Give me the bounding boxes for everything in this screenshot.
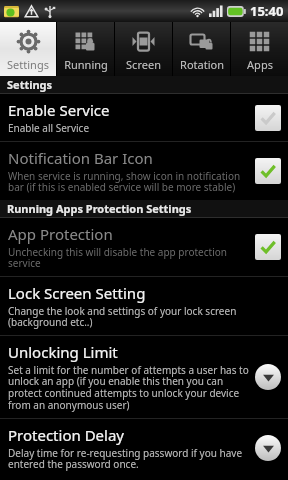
button[interactable]: Rotation (173, 22, 230, 76)
button[interactable]: Unlocking Limit (0, 336, 288, 418)
staticText: Settings (7, 77, 53, 92)
button[interactable]: Notification Bar Icon (0, 142, 288, 200)
staticText: Running Apps Protection Settings (7, 201, 192, 216)
staticText: Enable Service (8, 100, 110, 120)
button[interactable]: Apps (231, 22, 288, 76)
button[interactable]: Running (57, 22, 114, 76)
staticText: 15:40 (250, 2, 284, 20)
staticText: When service is running, show icon in no… (8, 169, 249, 194)
button[interactable]: Settings (0, 22, 56, 76)
button[interactable]: Enable Service (255, 105, 281, 131)
staticText: Set a limit for the number of attempts a… (8, 363, 249, 412)
button[interactable]: Expand Unlocking Limit (255, 364, 281, 390)
button[interactable]: Lock Screen Setting (0, 277, 288, 335)
staticText: Settings (7, 57, 49, 72)
button[interactable]: Notification Bar Icon (255, 158, 281, 184)
staticText: Rotation (180, 57, 224, 72)
button[interactable]: Protection Delay (0, 419, 288, 477)
button[interactable]: Screen (115, 22, 172, 76)
staticText: Unchecking this will disable the app pro… (8, 245, 249, 270)
staticText: Screen (126, 57, 161, 72)
staticText: Notification Bar Icon (8, 148, 153, 168)
staticText: Protection Delay (8, 425, 124, 445)
staticText: Running (64, 57, 108, 72)
staticText: Enable all Service (8, 121, 90, 135)
staticText: Lock Screen Setting (8, 283, 146, 303)
staticText: Unlocking Limit (8, 342, 118, 362)
button[interactable]: Enable Service (0, 94, 288, 141)
button[interactable]: Expand Protection Delay (255, 435, 281, 461)
staticText: Change the look and settings of your loc… (8, 304, 275, 329)
button[interactable]: App Protection (0, 218, 288, 276)
staticText: Apps (247, 57, 273, 72)
staticText: Delay time for re-requesting password if… (8, 446, 249, 471)
button[interactable]: App Protection (255, 234, 281, 260)
staticText: App Protection (8, 224, 113, 244)
